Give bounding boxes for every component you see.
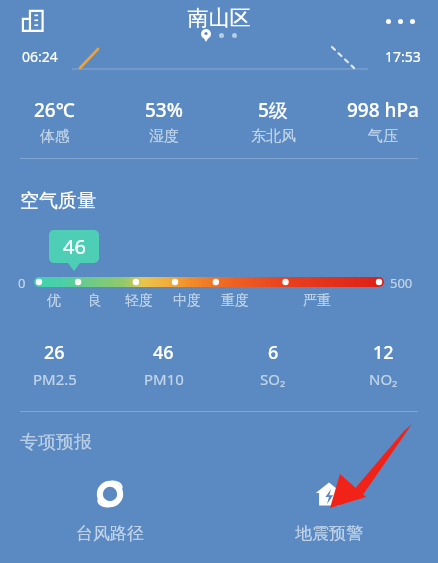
button[interactable]: 台风路径 bbox=[0, 479, 219, 544]
staticText: SO₂ bbox=[260, 369, 286, 389]
staticText: 体感 bbox=[40, 127, 70, 146]
button[interactable]: 5级 bbox=[218, 97, 328, 146]
button[interactable]: 26℃ bbox=[0, 97, 109, 146]
staticText: 地震预警 bbox=[295, 523, 363, 544]
staticText: 26 bbox=[44, 340, 65, 365]
staticText: 空气质量 bbox=[20, 189, 96, 213]
staticText: 12 bbox=[373, 340, 394, 365]
staticText: 46 bbox=[153, 340, 174, 365]
button[interactable]: City list bbox=[17, 6, 49, 38]
staticText: 500 bbox=[390, 274, 413, 292]
staticText: 专项预报 bbox=[20, 431, 92, 454]
staticText: 0 bbox=[18, 274, 26, 292]
staticText: 优 bbox=[47, 292, 61, 310]
staticText: 46 bbox=[63, 233, 86, 260]
staticText: 6 bbox=[268, 340, 279, 365]
button[interactable]: 998 hPa bbox=[328, 97, 438, 146]
staticText: 53% bbox=[145, 97, 183, 123]
staticText: 重度 bbox=[221, 292, 249, 310]
button[interactable]: 46 bbox=[109, 340, 218, 389]
button[interactable]: 53% bbox=[109, 97, 218, 146]
button[interactable]: 26 bbox=[0, 340, 109, 389]
staticText: 严重 bbox=[303, 292, 331, 310]
staticText: PM10 bbox=[144, 369, 184, 389]
staticText: 06:24 bbox=[22, 47, 58, 66]
staticText: 26℃ bbox=[34, 97, 75, 123]
staticText: 998 hPa bbox=[347, 97, 419, 123]
staticText: 17:53 bbox=[385, 47, 421, 66]
staticText: 湿度 bbox=[149, 127, 179, 146]
staticText: 南山区 bbox=[0, 5, 438, 31]
button[interactable]: 6 bbox=[218, 340, 328, 389]
staticText: 东北风 bbox=[251, 127, 296, 146]
button[interactable]: More options bbox=[386, 11, 428, 31]
button[interactable]: 12 bbox=[328, 340, 438, 389]
staticText: 气压 bbox=[368, 127, 398, 146]
staticText: PM2.5 bbox=[33, 369, 77, 389]
button[interactable]: 地震预警 bbox=[219, 479, 438, 544]
staticText: 5级 bbox=[258, 97, 288, 123]
staticText: 良 bbox=[88, 292, 102, 310]
staticText: 中度 bbox=[173, 292, 201, 310]
staticText: 轻度 bbox=[125, 292, 153, 310]
staticText: NO₂ bbox=[369, 369, 398, 389]
staticText: 台风路径 bbox=[76, 523, 144, 544]
